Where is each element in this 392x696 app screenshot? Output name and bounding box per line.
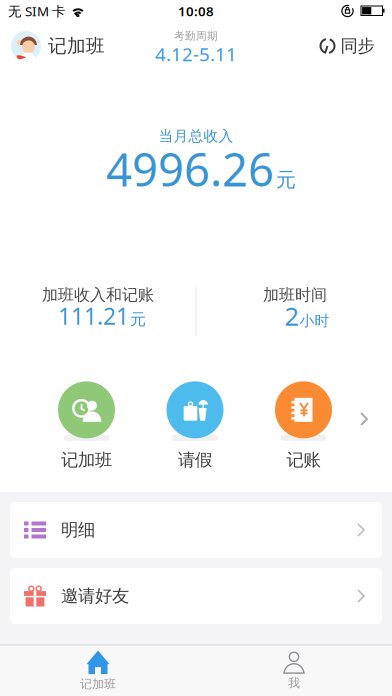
staticText: 考勤周期: [174, 29, 218, 42]
button[interactable]: 记加班: [80, 651, 116, 691]
staticText: 当月总收入: [158, 127, 233, 145]
button[interactable]: 明细: [10, 502, 382, 558]
staticText: 10:08: [178, 2, 214, 20]
staticText: 同步: [340, 35, 374, 57]
button[interactable]: 我: [283, 652, 305, 690]
staticText: 明细: [61, 519, 95, 541]
button[interactable]: 记加班 个人信息: [11, 31, 105, 61]
button[interactable]: 记加班: [58, 381, 115, 471]
staticText: 记加班: [61, 449, 112, 471]
staticText: 4.12-5.11: [155, 42, 237, 66]
staticText: 记加班: [48, 34, 105, 57]
button[interactable]: 请假: [166, 381, 223, 471]
staticText: 我: [288, 676, 300, 690]
staticText: 加班时间: [263, 285, 327, 305]
staticText: 记加班: [80, 677, 116, 691]
staticText: 元: [276, 168, 296, 192]
staticText: 记账: [286, 449, 320, 471]
staticText: 4996.26: [106, 139, 274, 199]
button[interactable]: 同步: [319, 35, 374, 57]
button[interactable]: 更多操作: [360, 412, 370, 430]
staticText: 2: [284, 299, 298, 333]
staticText: 111.21: [58, 301, 129, 331]
button[interactable]: 邀请好友: [10, 568, 382, 624]
staticText: 请假: [178, 449, 212, 471]
staticText: 无 SIM 卡: [8, 2, 65, 20]
staticText: 加班收入和记账: [42, 285, 154, 305]
staticText: 元: [130, 310, 146, 329]
staticText: 邀请好友: [61, 585, 129, 607]
button[interactable]: 记账: [275, 381, 332, 471]
staticText: 小时: [299, 312, 329, 330]
